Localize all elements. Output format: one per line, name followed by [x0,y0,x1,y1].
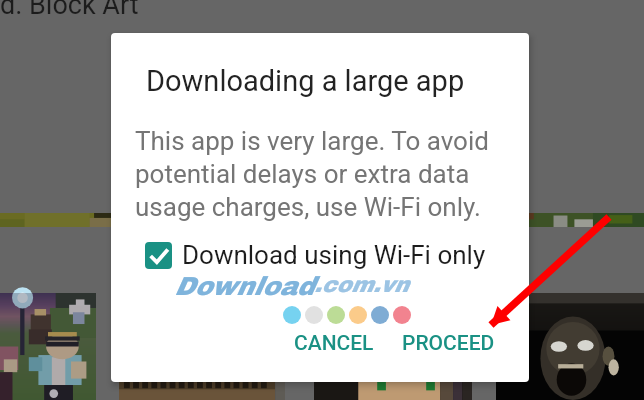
other: Checked [145,242,172,269]
staticText: This app is very large. To avoid potenti… [135,126,489,222]
staticText: d. Block Art [0,0,139,21]
button[interactable]: PROCEED [390,321,507,366]
button[interactable]: CANCEL [282,321,386,366]
button[interactable]: Checked [145,240,486,270]
staticText: .com.vn [314,273,409,297]
staticText: Downloading a large app [146,64,465,98]
staticText: Download [174,272,314,300]
staticText: Download using Wi-Fi only [182,240,486,270]
staticText: CANCEL [294,331,374,356]
staticText: PROCEED [402,331,495,356]
